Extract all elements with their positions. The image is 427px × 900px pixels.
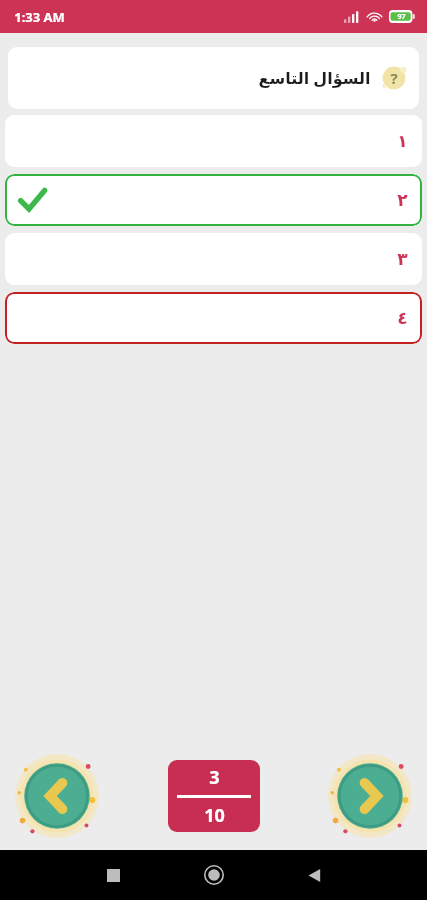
button[interactable]: ٤ — [5, 292, 422, 344]
button[interactable]: Home — [197, 858, 231, 892]
staticText: 1:33 AM — [14, 8, 65, 26]
button[interactable]: ٢ — [5, 174, 422, 226]
button[interactable]: Next question — [329, 755, 411, 837]
staticText: 97 — [397, 12, 406, 22]
staticText: السؤال التاسع — [258, 67, 371, 89]
button[interactable]: السؤال التاسع — [8, 47, 419, 109]
button[interactable]: 3 — [168, 760, 260, 832]
button[interactable]: Previous question — [16, 755, 98, 837]
staticText: ٢ — [397, 190, 408, 210]
staticText: 10 — [204, 803, 225, 828]
staticText: ١ — [397, 131, 408, 151]
staticText: ? — [390, 68, 398, 88]
button[interactable]: Back — [297, 858, 331, 892]
staticText: 3 — [209, 765, 220, 790]
button[interactable]: ١ — [5, 115, 422, 167]
staticText: ٣ — [397, 249, 408, 269]
button[interactable]: ٣ — [5, 233, 422, 285]
button[interactable]: Recent apps — [96, 858, 130, 892]
staticText: ٤ — [397, 308, 408, 328]
